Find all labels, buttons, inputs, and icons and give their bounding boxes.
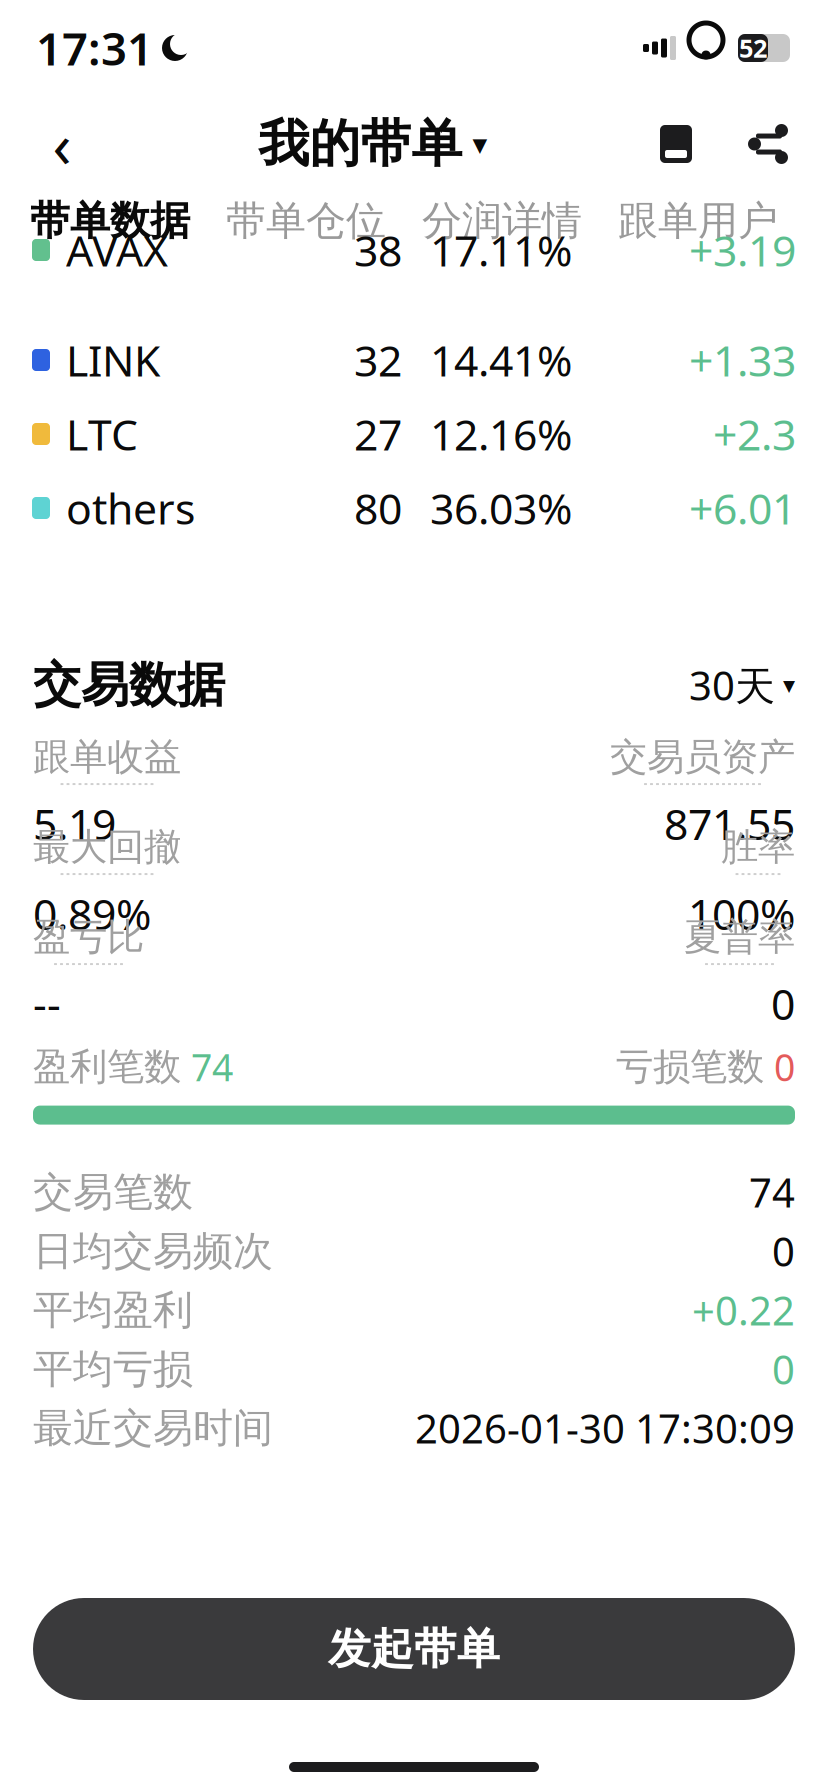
staticText: 交易笔数 xyxy=(33,1167,193,1217)
staticText: 0.89% xyxy=(33,885,151,942)
staticText: 74 xyxy=(749,1165,795,1219)
staticText: 17:31 xyxy=(36,18,153,78)
staticText: 跟单用户 xyxy=(618,196,778,245)
button[interactable]: 带单数据 xyxy=(30,192,226,250)
staticText: 平均盈利 xyxy=(33,1285,193,1335)
staticText: 带单数据 xyxy=(30,196,190,245)
staticText: -- xyxy=(33,975,61,1032)
button[interactable]: Share xyxy=(744,120,792,168)
staticText: 30天 xyxy=(689,658,775,711)
button[interactable]: Records xyxy=(652,120,700,168)
staticText: 亏损笔数 xyxy=(616,1044,764,1090)
staticText: ‹ xyxy=(52,103,71,185)
staticText: 0 xyxy=(772,1342,795,1396)
staticText: 36.03% xyxy=(430,480,572,536)
staticText: +6.01 xyxy=(689,480,796,536)
staticText: 100% xyxy=(688,885,795,942)
button[interactable]: 30天 xyxy=(689,652,795,717)
staticText: LINK xyxy=(66,332,160,388)
staticText: others xyxy=(66,480,195,536)
staticText: 交易数据 xyxy=(33,655,225,714)
staticText: 17.11% xyxy=(430,222,572,278)
staticText: 0 xyxy=(772,1224,795,1278)
button[interactable]: Back xyxy=(30,112,94,176)
staticText: 74 xyxy=(191,1042,233,1092)
staticText: 带单仓位 xyxy=(226,196,386,245)
staticText: 12.16% xyxy=(430,406,572,462)
staticText: +2.3 xyxy=(713,406,796,462)
staticText: 0 xyxy=(774,1042,795,1092)
staticText: 盈亏比 xyxy=(33,914,144,960)
staticText: 跟单收益 xyxy=(33,734,181,780)
staticText: 胜率 xyxy=(721,824,795,870)
staticText: +0.22 xyxy=(692,1283,795,1337)
staticText: 盈利笔数 xyxy=(33,1044,181,1090)
staticText: 14.41% xyxy=(430,332,572,388)
button[interactable]: 带单仓位 xyxy=(226,192,422,250)
button[interactable]: 发起带单 xyxy=(33,1598,795,1700)
staticText: 最近交易时间 xyxy=(33,1403,273,1453)
staticText: +1.33 xyxy=(689,332,796,388)
staticText: 52 xyxy=(739,31,767,65)
staticText: 5.19 xyxy=(33,795,116,852)
staticText: +3.19 xyxy=(689,222,796,278)
staticText: AVAX xyxy=(66,222,168,278)
staticText: 32 xyxy=(354,332,402,388)
staticText: LTC xyxy=(66,406,138,462)
button[interactable]: 跟单用户 xyxy=(618,192,778,250)
staticText: ▾ xyxy=(472,127,487,161)
staticText: 平均亏损 xyxy=(33,1344,193,1394)
staticText: ▾ xyxy=(783,671,795,699)
staticText: 80 xyxy=(354,480,402,536)
staticText: 2026-01-30 17:30:09 xyxy=(415,1401,795,1455)
staticText: 我的带单 xyxy=(258,113,462,175)
staticText: 38 xyxy=(354,222,402,278)
staticText: 0 xyxy=(771,975,795,1032)
staticText: 27 xyxy=(354,406,402,462)
staticText: 发起带单 xyxy=(328,1623,500,1675)
button[interactable]: 我的带单 xyxy=(252,112,493,176)
staticText: 夏普率 xyxy=(684,914,795,960)
staticText: 日均交易频次 xyxy=(33,1226,273,1276)
staticText: 交易员资产 xyxy=(610,734,795,780)
staticText: 分润详情 xyxy=(422,196,582,245)
staticText: 871.55 xyxy=(664,795,795,852)
staticText: 最大回撤 xyxy=(33,824,181,870)
button[interactable]: 分润详情 xyxy=(422,192,618,250)
